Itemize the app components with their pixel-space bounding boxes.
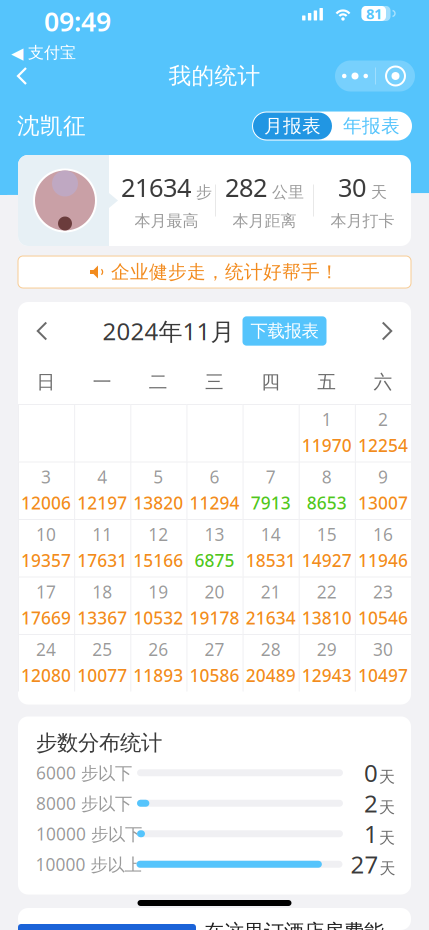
staticText: 30 xyxy=(373,638,393,661)
staticText: 11970 xyxy=(302,434,352,457)
staticText: 2 xyxy=(364,787,378,819)
staticText: 一 xyxy=(93,370,112,393)
button[interactable]: 更多 xyxy=(335,60,375,91)
staticText: 19 xyxy=(148,580,168,603)
staticText: 3 xyxy=(41,465,51,488)
staticText: 12006 xyxy=(21,491,71,514)
staticText: 30 xyxy=(338,170,366,204)
staticText: 四 xyxy=(261,370,280,393)
staticText: 81 xyxy=(366,4,382,23)
staticText: 7913 xyxy=(251,491,291,514)
staticText: 11893 xyxy=(133,664,183,687)
staticText: 10546 xyxy=(358,606,408,629)
button[interactable]: 关闭 xyxy=(376,60,415,91)
staticText: 10077 xyxy=(77,664,127,687)
staticText: 6000 步以下 xyxy=(36,761,132,784)
staticText: 三 xyxy=(205,370,224,393)
staticText: ◀ 支付宝 xyxy=(11,43,76,63)
staticText: 19178 xyxy=(189,606,239,629)
staticText: 10586 xyxy=(189,664,239,687)
staticText: 9 xyxy=(378,465,388,488)
staticText: 13 xyxy=(204,523,224,546)
staticText: 09:49 xyxy=(44,3,111,39)
staticText: 11294 xyxy=(189,491,239,514)
staticText: 五 xyxy=(317,370,336,393)
staticText: 本月距离 xyxy=(232,211,296,231)
staticText: 天 xyxy=(379,828,395,848)
staticText: 13810 xyxy=(302,606,352,629)
staticText: 天 xyxy=(379,767,395,787)
staticText: 2024年11月 xyxy=(102,315,234,347)
staticText: 19357 xyxy=(21,549,71,572)
staticText: 14927 xyxy=(302,549,352,572)
staticText: 27 xyxy=(350,848,378,880)
staticText: 25 xyxy=(92,638,112,661)
staticText: 12943 xyxy=(302,664,352,687)
staticText: 13367 xyxy=(77,606,127,629)
button[interactable]: 下个月 xyxy=(363,302,411,360)
button[interactable]: 下载报表 xyxy=(242,316,326,346)
staticText: 20 xyxy=(204,580,224,603)
staticText: 20489 xyxy=(246,664,296,687)
staticText: 年报表 xyxy=(343,114,400,137)
staticText: 6875 xyxy=(194,549,234,572)
staticText: 13820 xyxy=(133,491,183,514)
staticText: 16 xyxy=(373,523,393,546)
staticText: 18531 xyxy=(246,549,296,572)
staticText: 2 xyxy=(378,408,388,431)
staticText: 26 xyxy=(148,638,168,661)
staticText: 21634 xyxy=(246,606,296,629)
staticText: 14 xyxy=(261,523,281,546)
staticText: 10 xyxy=(36,523,56,546)
staticText: 天 xyxy=(379,858,395,878)
staticText: 12080 xyxy=(21,664,71,687)
staticText: 天 xyxy=(379,797,395,817)
staticText: 17631 xyxy=(77,549,127,572)
staticText: 公里 xyxy=(272,182,304,202)
staticText: 29 xyxy=(317,638,337,661)
button[interactable]: 返回 xyxy=(0,55,44,97)
staticText: 步 xyxy=(196,182,212,202)
staticText: 18 xyxy=(92,580,112,603)
staticText: 28 xyxy=(261,638,281,661)
button[interactable]: 月报表 xyxy=(253,112,332,139)
staticText: 天 xyxy=(371,182,387,202)
staticText: 5 xyxy=(153,465,163,488)
staticText: 1 xyxy=(322,408,332,431)
staticText: 15166 xyxy=(133,549,183,572)
staticText: 6 xyxy=(209,465,219,488)
button[interactable]: 上个月 xyxy=(18,302,66,360)
staticText: 12197 xyxy=(77,491,127,514)
staticText: 7 xyxy=(266,465,276,488)
staticText: 0 xyxy=(364,757,378,789)
staticText: 10532 xyxy=(133,606,183,629)
staticText: 17669 xyxy=(21,606,71,629)
staticText: 本月最高 xyxy=(134,211,198,231)
staticText: 步数分布统计 xyxy=(36,730,162,756)
staticText: 8653 xyxy=(307,491,347,514)
staticText: 4 xyxy=(97,465,107,488)
button[interactable]: 年报表 xyxy=(332,112,411,139)
staticText: 我的统计 xyxy=(168,62,260,90)
staticText: 日 xyxy=(37,370,56,393)
staticText: 15 xyxy=(317,523,337,546)
staticText: 23 xyxy=(373,580,393,603)
staticText: 21634 xyxy=(121,170,191,204)
staticText: 282 xyxy=(225,170,267,204)
staticText: 企业健步走，统计好帮手！ xyxy=(111,260,339,283)
staticText: 在这里订酒店房费能这么便 xyxy=(204,919,384,930)
staticText: 沈凯征 xyxy=(17,112,86,140)
staticText: 10000 步以下 xyxy=(36,822,142,845)
staticText: 21 xyxy=(261,580,281,603)
staticText: 12 xyxy=(148,523,168,546)
staticText: 10497 xyxy=(358,664,408,687)
